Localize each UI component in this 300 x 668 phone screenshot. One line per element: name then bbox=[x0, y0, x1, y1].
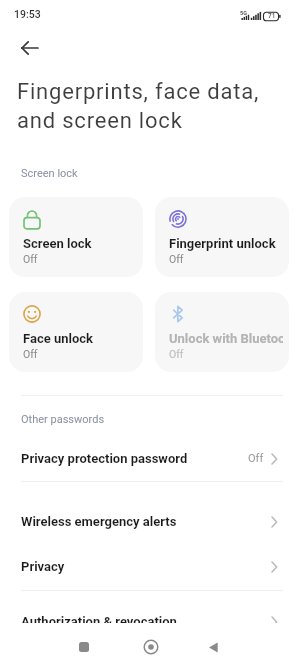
staticText: Screen lock bbox=[23, 236, 137, 251]
staticText: Off bbox=[248, 452, 264, 465]
staticText: Authorization & revocation bbox=[21, 614, 177, 629]
button[interactable] bbox=[9, 36, 51, 64]
button[interactable]: Privacy protection password bbox=[0, 436, 300, 481]
staticText: Privacy protection password bbox=[21, 451, 188, 466]
button[interactable] bbox=[70, 633, 98, 661]
staticText: 5G bbox=[240, 10, 247, 16]
staticText: Privacy bbox=[21, 559, 65, 574]
staticText: Unlock with Bluetooth bbox=[169, 331, 283, 346]
staticText: 19:53 bbox=[14, 8, 41, 20]
button[interactable] bbox=[199, 633, 227, 661]
staticText: Off bbox=[23, 253, 38, 265]
staticText: Off bbox=[169, 348, 184, 360]
staticText: Face unlock bbox=[23, 331, 137, 346]
staticText: Screen lock bbox=[21, 167, 78, 180]
staticText: Fingerprint unlock bbox=[169, 236, 283, 251]
button[interactable]: Authorization & revocation bbox=[0, 599, 300, 644]
button[interactable]: Fingerprint unlock bbox=[155, 197, 289, 277]
button[interactable]: Screen lock bbox=[9, 197, 143, 277]
button[interactable]: Privacy bbox=[0, 544, 300, 589]
button[interactable]: Unlock with Bluetooth bbox=[155, 292, 289, 372]
button[interactable]: Wireless emergency alerts bbox=[0, 499, 300, 544]
staticText: Off bbox=[169, 253, 184, 265]
staticText: Wireless emergency alerts bbox=[21, 514, 177, 529]
staticText: 71 bbox=[268, 12, 276, 20]
staticText: Fingerprints, face data, and screen lock bbox=[17, 79, 260, 133]
staticText: Off bbox=[23, 348, 38, 360]
button[interactable] bbox=[137, 633, 165, 661]
staticText: Other passwords bbox=[21, 413, 105, 426]
button[interactable]: Face unlock bbox=[9, 292, 143, 372]
